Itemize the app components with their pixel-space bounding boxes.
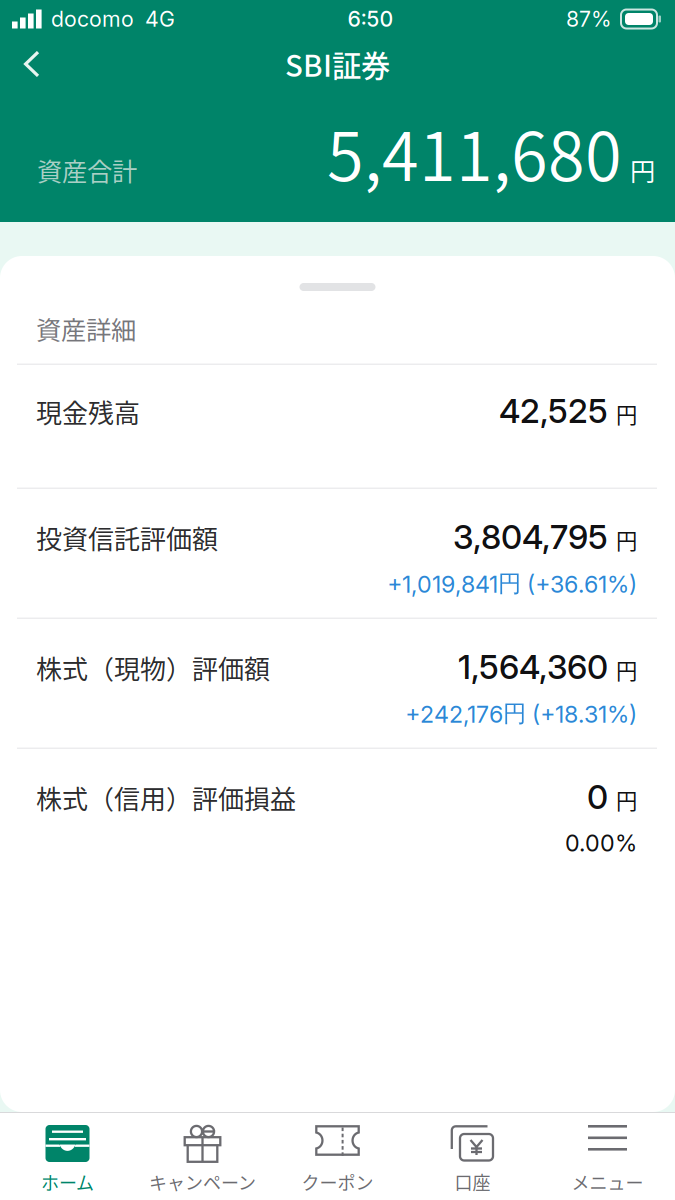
staticText: 円 — [630, 152, 655, 188]
staticText: SBI証券 — [285, 43, 390, 85]
staticText: 円 — [616, 398, 637, 429]
button[interactable]: ホーム — [0, 1112, 135, 1200]
button[interactable]: キャンペーン — [135, 1112, 270, 1200]
staticText: docomo — [51, 6, 134, 32]
staticText: メニュー — [571, 1169, 643, 1195]
button[interactable]: 口座 — [405, 1112, 540, 1200]
staticText: 円 — [616, 784, 637, 815]
staticText: 5,411,680 — [327, 104, 622, 200]
staticText: 6:50 — [347, 6, 393, 32]
staticText: 87% — [566, 6, 612, 32]
staticText: 42,525 — [499, 391, 608, 431]
staticText: クーポン — [301, 1169, 373, 1195]
staticText: 投資信託評価額 — [36, 519, 218, 556]
staticText: 株式（信用）評価損益 — [36, 779, 296, 816]
staticText: キャンペーン — [149, 1169, 256, 1195]
staticText: 株式（現物）評価額 — [36, 649, 270, 686]
staticText: 円 — [616, 654, 637, 685]
staticText: 口座 — [454, 1169, 490, 1195]
staticText: 4G — [145, 6, 175, 32]
staticText: +1,019,841円 (+36.61%) — [387, 569, 637, 598]
button[interactable]: Back — [0, 38, 64, 90]
staticText: 3,804,795 — [453, 517, 608, 557]
button[interactable]: 現金残高 — [0, 365, 675, 488]
staticText: 円 — [616, 524, 637, 555]
button[interactable]: 投資信託評価額 — [0, 489, 675, 618]
staticText: +242,176円 (+18.31%) — [405, 699, 637, 728]
staticText: ホーム — [41, 1169, 94, 1195]
staticText: 資産合計 — [37, 152, 137, 188]
button[interactable]: 株式（現物）評価額 — [0, 619, 675, 748]
button[interactable]: メニュー — [540, 1112, 675, 1200]
staticText: 現金残高 — [36, 393, 140, 430]
staticText: 資産詳細 — [36, 310, 136, 347]
staticText: 1,564,360 — [458, 647, 608, 687]
staticText: 0.00% — [565, 829, 637, 857]
button[interactable]: 株式（信用）評価損益 — [0, 749, 675, 879]
button[interactable]: クーポン — [270, 1112, 405, 1200]
staticText: 0 — [587, 777, 608, 817]
